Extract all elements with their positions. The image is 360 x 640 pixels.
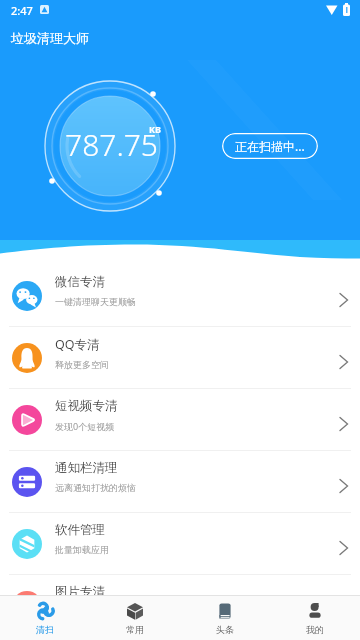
staticText: 清扫: [36, 624, 54, 635]
staticText: 图片专清: [55, 584, 105, 600]
staticText: 短视频专清: [55, 398, 118, 414]
staticText: 软件管理: [55, 522, 105, 538]
staticText: KB: [149, 123, 161, 135]
staticText: 批量卸载应用: [55, 544, 109, 555]
staticText: 远离通知打扰的烦恼: [55, 482, 136, 493]
button[interactable]: 清扫: [0, 596, 90, 640]
button[interactable]: 微信专清: [0, 265, 360, 326]
staticText: 787.75: [65, 124, 158, 165]
staticText: 发现0个短视频: [55, 420, 115, 432]
staticText: 微信专清: [55, 274, 105, 290]
staticText: 通知栏清理: [55, 460, 118, 476]
staticText: 头条: [216, 624, 234, 635]
staticText: 常用: [126, 624, 144, 635]
staticText: 我的: [306, 624, 324, 635]
button[interactable]: 短视频专清: [0, 389, 360, 450]
button[interactable]: 常用: [90, 596, 180, 640]
button[interactable]: 通知栏清理: [0, 451, 360, 512]
staticText: QQ专清: [55, 336, 100, 353]
staticText: 2:47: [11, 3, 33, 18]
staticText: 正在扫描中...: [235, 138, 305, 154]
button[interactable]: 图片专清: [0, 575, 360, 636]
staticText: 释放更多空间: [55, 359, 109, 370]
button[interactable]: 头条: [180, 596, 270, 640]
button[interactable]: 软件管理: [0, 513, 360, 574]
button[interactable]: 我的: [270, 596, 360, 640]
staticText: 一键清理聊天更顺畅: [55, 296, 136, 307]
button[interactable]: QQ专清: [0, 327, 360, 388]
staticText: 垃圾清理大师: [11, 30, 89, 46]
button[interactable]: 正在扫描中...: [222, 133, 318, 159]
